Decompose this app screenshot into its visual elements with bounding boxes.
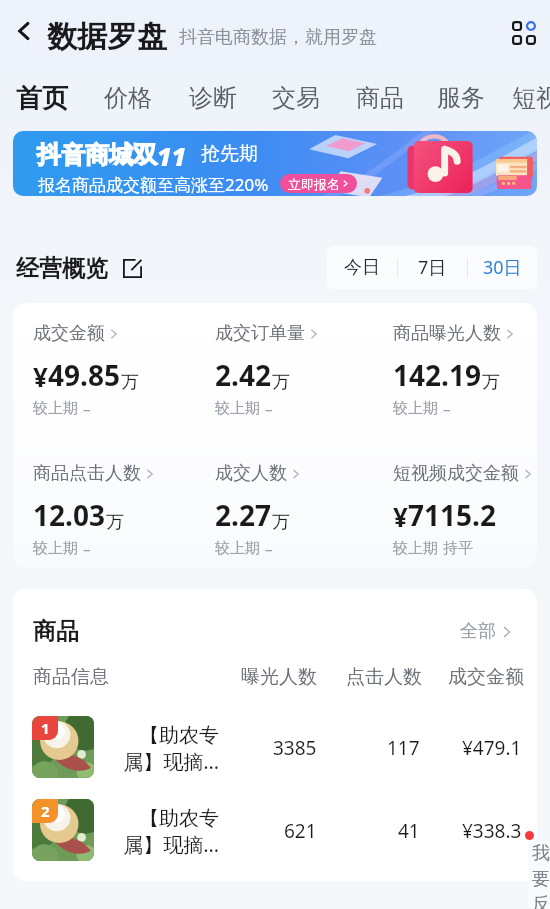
staticText: – <box>443 399 451 419</box>
staticText: 商品点击人数 <box>33 462 141 485</box>
staticText: 【助农专属】现摘… <box>117 723 219 775</box>
staticText: 交易 <box>272 83 320 113</box>
button[interactable]: All apps <box>506 15 542 51</box>
staticText: 成交订单量 <box>215 322 305 345</box>
button[interactable]: 商品曝光人数 <box>393 322 537 419</box>
staticText: 成交金额 <box>448 665 524 689</box>
staticText: 较上期 <box>33 399 78 418</box>
staticText: – <box>265 539 273 559</box>
staticText: 诊断 <box>189 83 237 113</box>
staticText: 短视频成交金额 <box>393 462 519 485</box>
staticText: – <box>265 399 273 419</box>
staticText: 万 <box>106 511 124 534</box>
button[interactable]: 首页 <box>6 77 78 119</box>
staticText: 成交金额 <box>33 322 105 345</box>
staticText: 2.42 <box>215 356 271 394</box>
staticText: ¥ <box>393 499 408 534</box>
staticText: 7日 <box>418 255 447 280</box>
staticText: 短视频 <box>512 83 550 113</box>
staticText: 经营概览 <box>16 254 108 283</box>
button[interactable]: 抖音商城双 <box>13 131 537 196</box>
staticText: 万 <box>272 511 290 534</box>
button[interactable]: 成交订单量 <box>215 322 390 419</box>
button[interactable]: Feedback <box>528 841 550 909</box>
staticText: 今日 <box>344 256 380 279</box>
staticText: ¥479.1 <box>462 735 522 761</box>
staticText: 7115.2 <box>408 496 496 534</box>
staticText: 较上期 <box>33 539 78 558</box>
button[interactable]: 短视频成交金额 <box>393 462 537 558</box>
staticText: 抖音电商数据，就用罗盘 <box>179 26 377 49</box>
button[interactable]: 2 <box>13 789 537 872</box>
staticText: 较上期 <box>393 399 438 418</box>
staticText: 万 <box>121 371 139 394</box>
staticText: 117 <box>387 735 420 761</box>
button[interactable]: 服务 <box>427 77 495 119</box>
button[interactable]: 30日 <box>467 246 537 289</box>
staticText: 我 要 反 馈 <box>532 842 550 909</box>
staticText: 商品信息 <box>33 665 109 689</box>
button[interactable]: 商品点击人数 <box>33 462 208 559</box>
staticText: 全部 <box>460 620 496 643</box>
staticText: 41 <box>398 818 420 844</box>
staticText: 抢先期 <box>201 142 258 166</box>
staticText: 服务 <box>437 83 485 113</box>
button[interactable]: 诊断 <box>179 77 247 119</box>
staticText: 11 <box>157 139 187 173</box>
staticText: 【助农专属】现摘… <box>117 806 219 858</box>
button[interactable]: 全部 <box>454 614 519 649</box>
staticText: 621 <box>284 818 317 844</box>
staticText: 1 <box>41 718 50 738</box>
button[interactable]: 1 <box>13 706 537 789</box>
staticText: 报名商品成交额至高涨至220% <box>38 173 269 196</box>
staticText: 曝光人数 <box>241 665 317 689</box>
staticText: 2.27 <box>215 496 271 534</box>
button[interactable]: 短视频 <box>502 77 550 119</box>
staticText: 2 <box>41 801 50 821</box>
button[interactable]: Back <box>8 15 40 47</box>
staticText: ¥338.3 <box>462 818 522 844</box>
staticText: 万 <box>482 371 500 394</box>
button[interactable]: 今日 <box>327 246 397 289</box>
staticText: 价格 <box>104 83 152 113</box>
button[interactable]: Edit overview <box>118 254 146 282</box>
staticText: – <box>83 399 91 419</box>
staticText: 30日 <box>483 255 522 280</box>
staticText: – <box>83 539 91 559</box>
staticText: 商品 <box>356 83 404 113</box>
staticText: 成交人数 <box>215 462 287 485</box>
staticText: 点击人数 <box>346 665 422 689</box>
button[interactable]: 成交人数 <box>215 462 390 559</box>
staticText: 立即报名 <box>288 176 340 192</box>
staticText: 万 <box>272 371 290 394</box>
button[interactable]: 立即报名 <box>280 174 357 193</box>
staticText: 3385 <box>273 735 317 761</box>
staticText: 持平 <box>443 539 473 558</box>
button[interactable]: 成交金额 <box>33 322 208 419</box>
staticText: 较上期 <box>215 539 260 558</box>
staticText: ¥ <box>33 359 48 394</box>
button[interactable]: 交易 <box>262 77 330 119</box>
staticText: 商品曝光人数 <box>393 322 501 345</box>
staticText: 142.19 <box>393 356 481 394</box>
staticText: 商品 <box>33 617 79 646</box>
staticText: 首页 <box>16 82 68 115</box>
staticText: 较上期 <box>393 539 438 558</box>
staticText: 49.85 <box>48 356 120 394</box>
staticText: 较上期 <box>215 399 260 418</box>
staticText: 抖音商城双 <box>37 140 157 170</box>
staticText: 12.03 <box>33 496 105 534</box>
staticText: 数据罗盘 <box>47 18 167 56</box>
button[interactable]: 7日 <box>397 246 467 289</box>
button[interactable]: 价格 <box>94 77 162 119</box>
button[interactable]: 商品 <box>346 77 414 119</box>
